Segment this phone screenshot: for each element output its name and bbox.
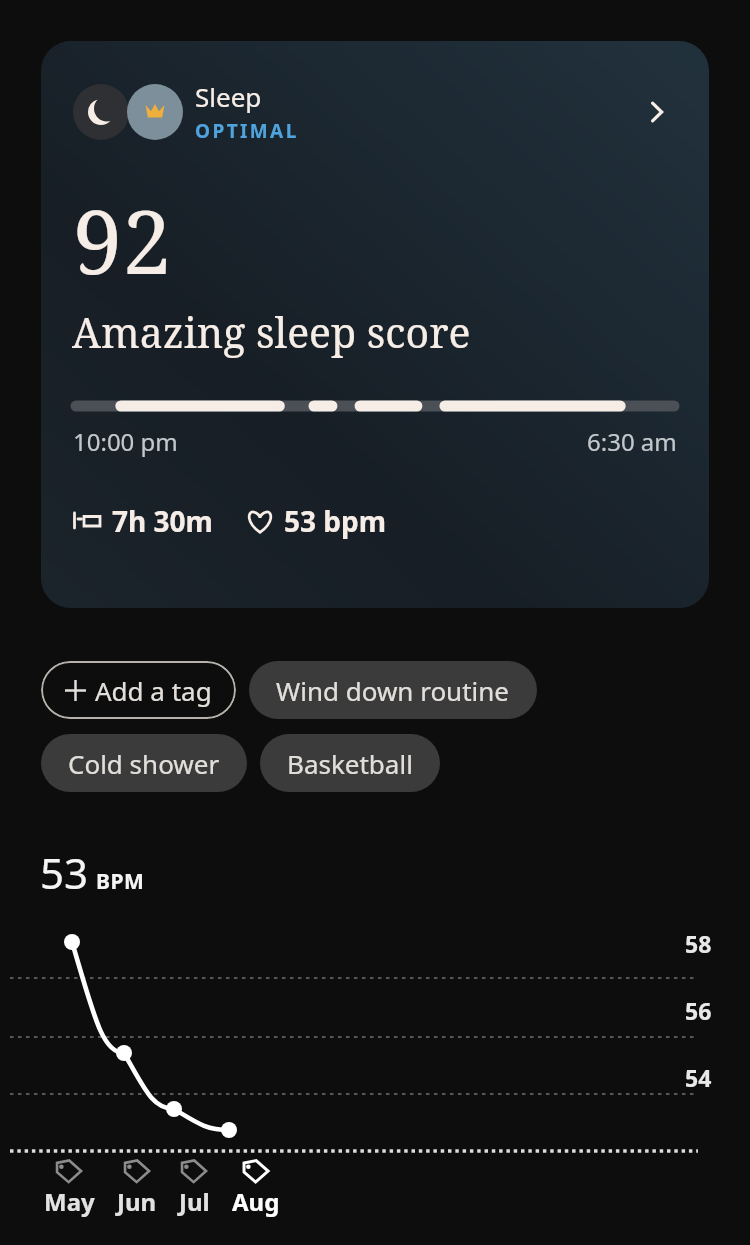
staticText: Jul <box>179 1185 210 1218</box>
staticText: 7h 30m <box>112 502 213 540</box>
staticText: Add a tag <box>95 673 212 708</box>
staticText: May <box>44 1185 95 1218</box>
staticText: 58 <box>685 928 712 959</box>
staticText: 54 <box>685 1062 712 1093</box>
staticText: 6:30 am <box>587 425 677 458</box>
staticText: Jun <box>117 1185 157 1218</box>
staticText: Basketball <box>287 746 413 781</box>
staticText: 53 bpm <box>284 502 387 540</box>
staticText: 53 <box>40 844 89 901</box>
staticText: 56 <box>685 995 712 1026</box>
staticText: Sleep <box>195 79 262 114</box>
button[interactable]: Tags in May <box>42 1157 97 1218</box>
button[interactable]: Sleep <box>41 41 709 608</box>
staticText: Cold shower <box>68 746 220 781</box>
staticText: Amazing sleep score <box>72 304 471 360</box>
staticText: Wind down routine <box>276 673 510 708</box>
staticText: OPTIMAL <box>195 118 299 144</box>
button[interactable]: Tags in Jun <box>115 1157 159 1218</box>
button[interactable]: Cold shower <box>41 734 247 792</box>
button[interactable]: Tags in Jul <box>177 1157 212 1218</box>
button[interactable]: Wind down routine <box>249 661 537 719</box>
staticText: Aug <box>232 1185 280 1218</box>
staticText: BPM <box>96 867 145 896</box>
button[interactable]: Tags in Aug <box>230 1157 282 1218</box>
button[interactable]: Basketball <box>260 734 440 792</box>
staticText: 92 <box>73 180 172 300</box>
button[interactable]: Open sleep details <box>633 88 681 136</box>
staticText: 10:00 pm <box>73 425 178 458</box>
button[interactable]: Add a tag <box>41 661 236 719</box>
